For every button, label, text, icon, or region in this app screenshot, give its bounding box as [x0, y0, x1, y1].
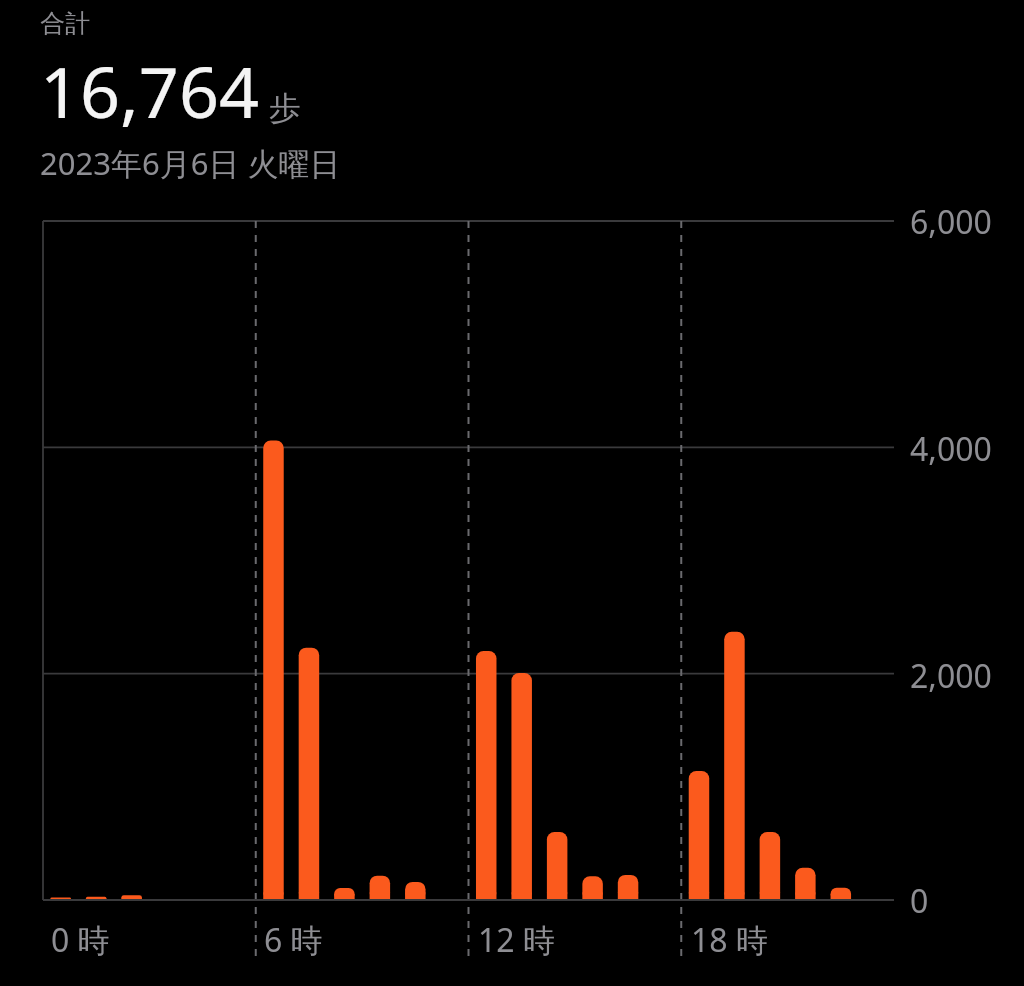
- staticText: 12 時: [478, 918, 555, 962]
- staticText: 歩: [269, 88, 301, 128]
- staticText: 0 時: [51, 918, 110, 962]
- staticText: 16,764: [40, 43, 259, 138]
- staticText: 6,000: [910, 200, 992, 244]
- staticText: 2023年6月6日 火曜日: [40, 142, 341, 184]
- staticText: 6 時: [264, 918, 323, 962]
- staticText: 4,000: [910, 427, 992, 471]
- button[interactable]: Hourly step chart: [0, 0, 1024, 986]
- staticText: 0: [910, 879, 929, 923]
- staticText: 2,000: [910, 654, 992, 698]
- staticText: 合計: [40, 8, 90, 39]
- staticText: 18 時: [691, 918, 768, 962]
